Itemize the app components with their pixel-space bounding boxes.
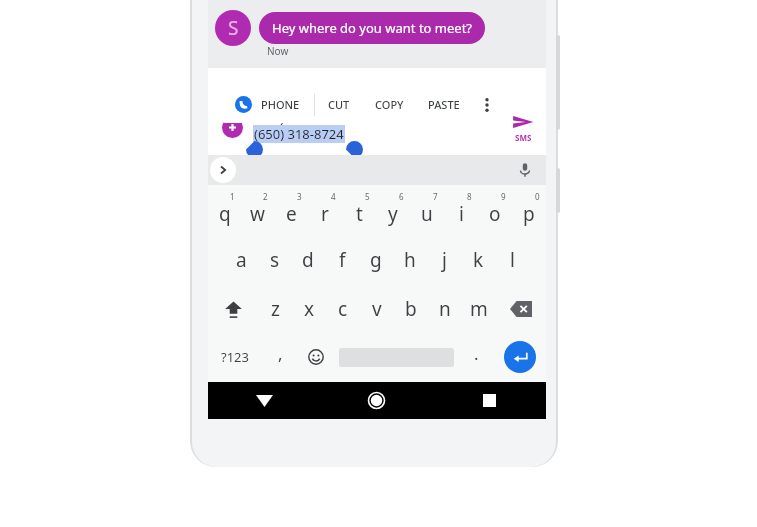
staticText: g [370,247,382,273]
button[interactable]: 5 [342,188,376,234]
button[interactable]: Emoji [298,335,334,379]
staticText: k [473,247,484,273]
staticText: Can you let Ben know? His number is [253,110,470,127]
staticText: Now [267,44,289,58]
button[interactable]: m [462,286,496,332]
staticText: r [321,201,329,227]
staticText: u [421,201,433,227]
staticText: z [271,296,280,322]
staticText: t [356,201,363,227]
button[interactable]: n [428,286,462,332]
staticText: v [372,296,382,322]
button[interactable]: l [495,237,529,283]
staticText: ?123 [221,348,249,366]
button[interactable]: 1 [208,188,241,234]
staticText: 2 [263,191,268,202]
button[interactable]: s [258,237,291,283]
staticText: COPY [375,97,404,112]
button[interactable]: f [325,237,359,283]
staticText: m [470,296,488,322]
staticText: 7 [433,191,438,202]
staticText: c [338,296,348,322]
staticText: o [489,201,501,227]
button[interactable]: Recent apps [433,382,546,419]
button[interactable]: PHONE [222,86,314,123]
button[interactable]: 0 [512,188,546,234]
button[interactable]: k [461,237,495,283]
staticText: 1 [230,191,235,202]
staticText: b [405,296,417,322]
button[interactable]: ?123 [208,335,262,379]
button[interactable]: Contact avatar S [215,10,251,46]
button[interactable] [334,335,458,379]
staticText: l [510,247,515,273]
button[interactable]: 6 [376,188,410,234]
staticText: a [236,247,247,273]
button[interactable]: Backspace [496,286,546,332]
button[interactable]: Enter [494,335,546,379]
button[interactable]: 3 [274,188,308,234]
button[interactable]: Send SMS [504,114,542,143]
button[interactable]: PASTE [416,86,472,123]
button[interactable]: Add attachment [222,117,243,138]
button[interactable]: 7 [410,188,444,234]
button[interactable]: Back [208,382,320,419]
button[interactable]: Home [320,382,433,419]
staticText: . [474,342,479,365]
staticText: (650) 318-8724 [254,125,344,143]
button[interactable]: (650) 318-8724 [253,125,345,143]
button[interactable]: a [225,237,258,283]
staticText: 3 [297,191,302,202]
staticText: i [459,201,464,227]
staticText: 8 [467,191,472,202]
button[interactable]: Shift [208,286,258,332]
staticText: , [278,342,283,365]
staticText: 9 [501,191,506,202]
staticText: j [442,247,447,273]
staticText: y [388,201,398,227]
staticText: w [250,201,265,227]
button[interactable]: 2 [241,188,274,234]
staticText: 0 [535,191,540,202]
staticText: 6 [399,191,404,202]
staticText: f [339,247,346,273]
button[interactable]: 8 [444,188,478,234]
button[interactable]: j [427,237,461,283]
staticText: p [523,201,535,227]
staticText: h [404,247,416,273]
button[interactable]: 4 [308,188,342,234]
staticText: Hey where do you want to meet? [272,19,472,37]
staticText: PASTE [428,97,460,112]
staticText: SMS [515,132,532,143]
button[interactable]: c [326,286,360,332]
button[interactable]: CUT [315,86,363,123]
button[interactable]: Voice input [516,161,534,179]
staticText: e [286,201,297,227]
button[interactable]: Hey where do you want to meet? [259,12,485,44]
staticText: d [302,247,314,273]
staticText: 5 [365,191,370,202]
button[interactable]: Expand [210,157,236,183]
staticText: 4 [331,191,336,202]
button[interactable]: g [359,237,393,283]
button[interactable]: d [291,237,325,283]
staticText: PHONE [261,97,300,112]
button[interactable]: More options [472,86,502,123]
button[interactable]: , [262,335,298,379]
button[interactable]: z [258,286,292,332]
button[interactable]: COPY [363,86,416,123]
button[interactable]: . [458,335,494,379]
staticText: n [439,296,451,322]
staticText: CUT [328,97,350,112]
button[interactable]: b [394,286,428,332]
staticText: s [270,247,280,273]
staticText: x [304,296,315,322]
staticText: q [219,201,231,227]
staticText: S [228,15,239,41]
button[interactable]: h [393,237,427,283]
button[interactable]: x [292,286,326,332]
button[interactable]: v [360,286,394,332]
button[interactable]: 9 [478,188,512,234]
